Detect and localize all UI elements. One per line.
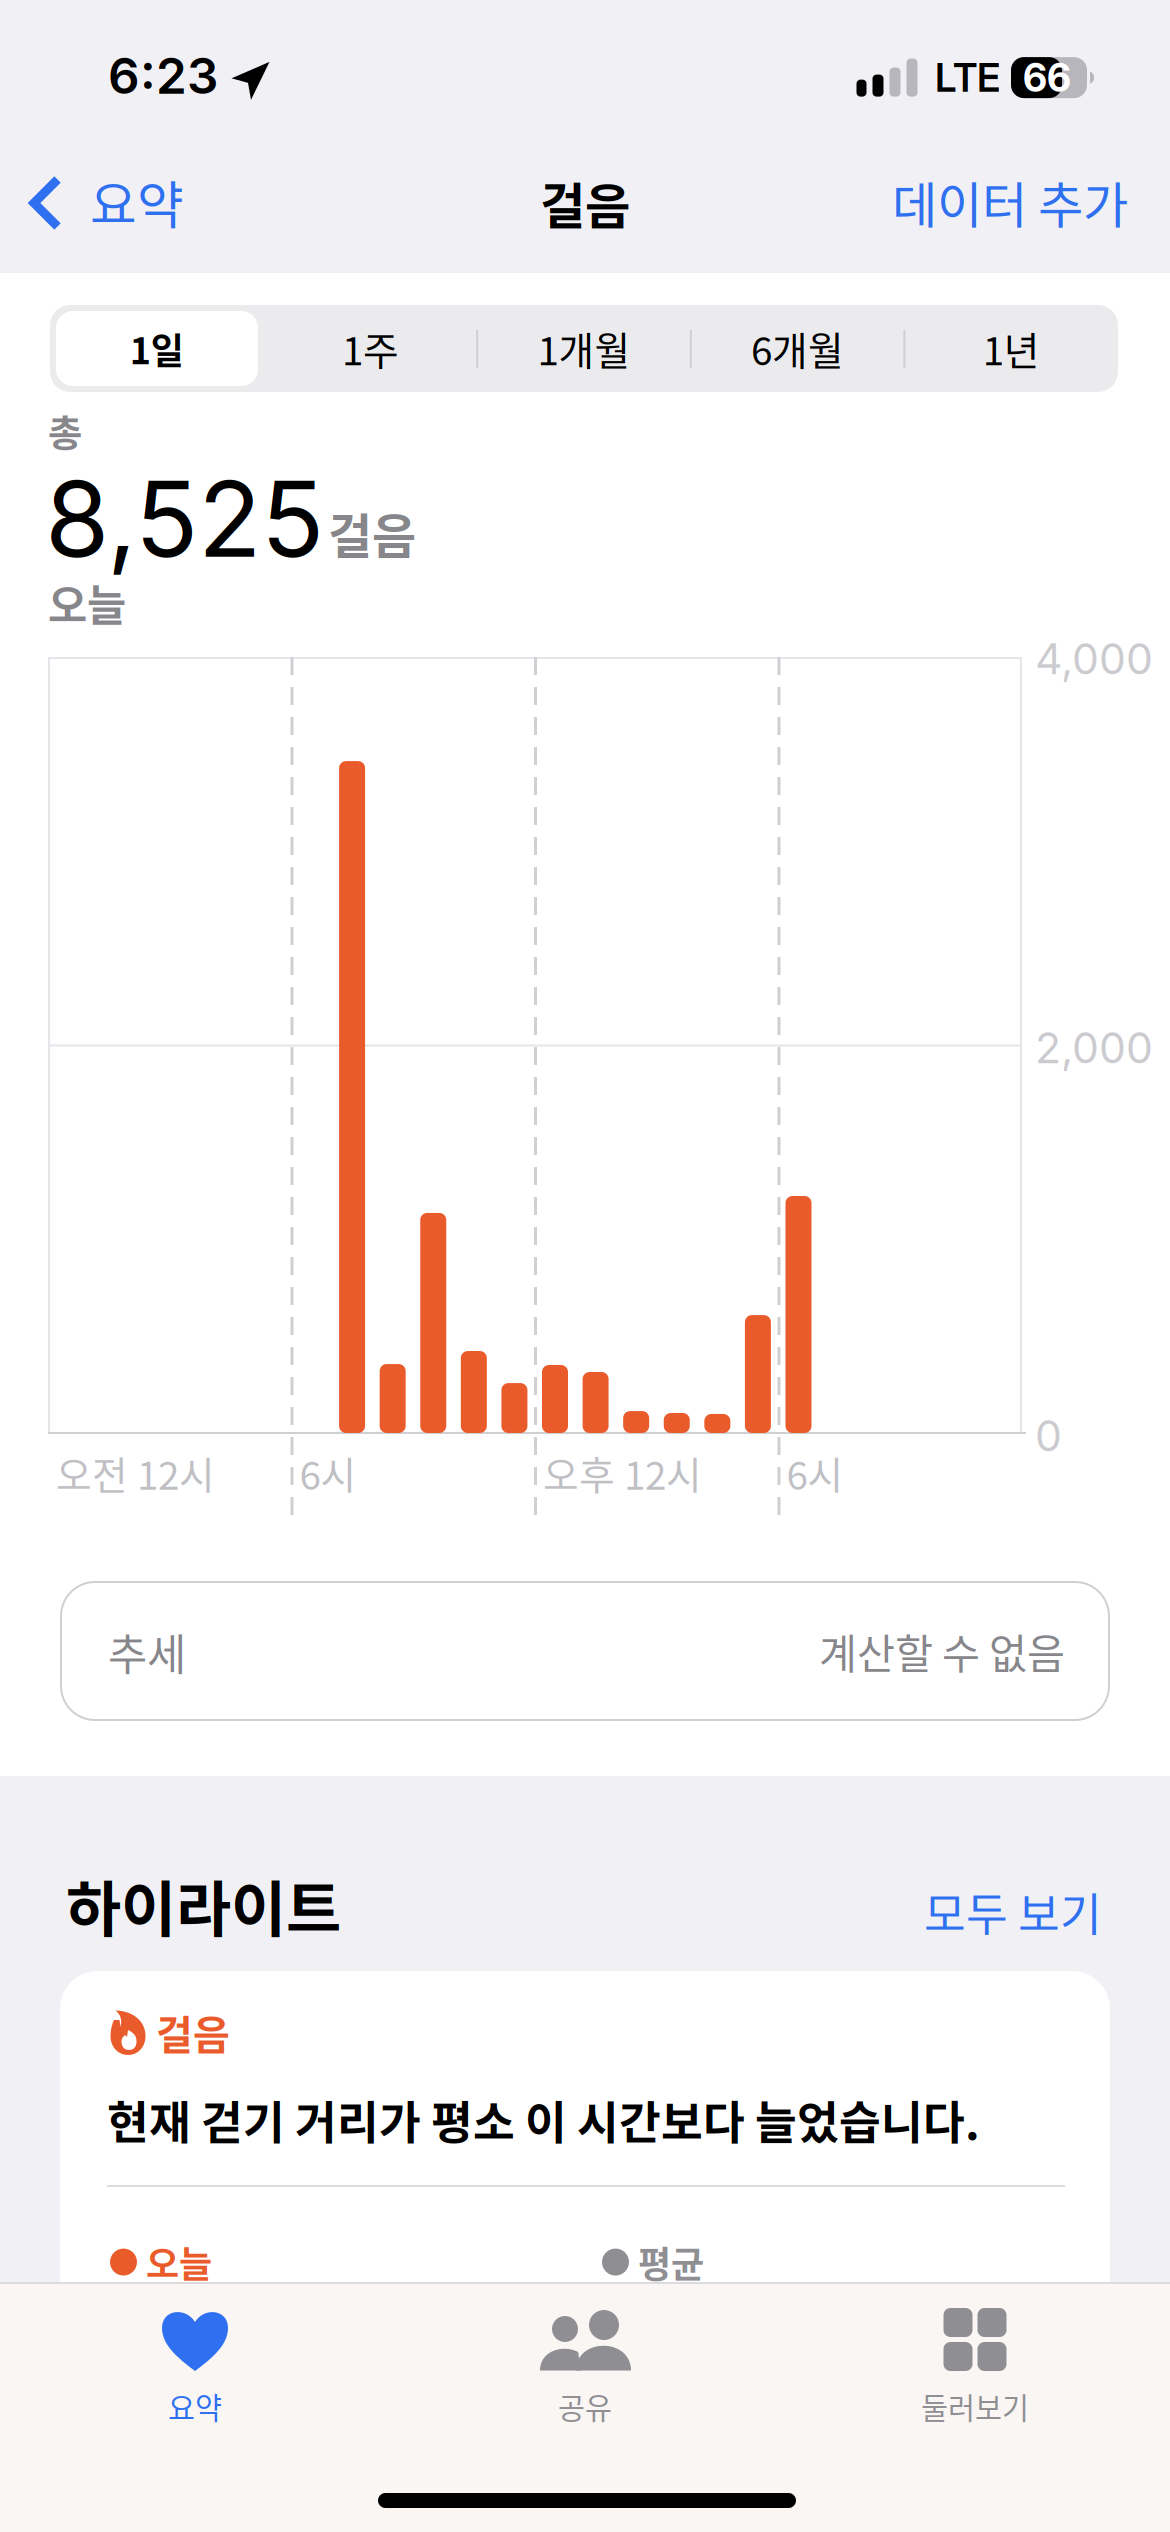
button[interactable]: 1주 — [264, 305, 477, 392]
staticText: 계산할 수 없음 — [819, 1621, 1065, 1681]
staticText: LTE — [935, 54, 1000, 101]
staticText: 6시 — [786, 1445, 843, 1501]
staticText: 4,000 — [1035, 633, 1153, 685]
staticText: 추세 — [108, 1621, 186, 1683]
staticText: 8,525 — [45, 456, 324, 582]
button[interactable]: 6개월 — [691, 305, 904, 392]
button[interactable]: 둘러보기 — [780, 2284, 1170, 2446]
staticText: 1년 — [983, 320, 1040, 376]
staticText: 평균 — [638, 2236, 704, 2288]
button[interactable]: 추세 — [61, 1582, 1109, 1720]
staticText: 요약 — [90, 165, 184, 239]
staticText: 오늘 — [48, 572, 126, 634]
button[interactable]: 공유 — [390, 2284, 780, 2446]
staticText: 둘러보기 — [921, 2385, 1029, 2427]
staticText: 현재 걷기 거리가 평소 이 시간보다 늘었습니다. — [107, 2087, 980, 2153]
staticText: 걸음 — [540, 167, 630, 238]
staticText: 하이라이트 — [66, 1862, 341, 1949]
staticText: 오전 12시 — [56, 1445, 215, 1501]
staticText: 데이터 추가 — [892, 166, 1128, 237]
button[interactable]: 1일 — [50, 305, 264, 392]
staticText: 총 — [48, 404, 82, 458]
staticText: 오늘 — [146, 2236, 212, 2288]
button[interactable]: 데이터 추가 — [868, 146, 1152, 257]
staticText: 걸음 — [156, 2003, 230, 2061]
button[interactable]: 요약 — [11, 159, 202, 245]
button[interactable]: 1개월 — [477, 305, 691, 392]
staticText: 요약 — [168, 2385, 222, 2427]
staticText: 공유 — [558, 2385, 612, 2427]
staticText: 6개월 — [751, 320, 844, 376]
staticText: 2,000 — [1035, 1022, 1153, 1074]
staticText: 6:23 — [108, 46, 218, 106]
button[interactable]: 모두 보기 — [904, 1865, 1122, 1959]
staticText: 0 — [1035, 1410, 1062, 1462]
button[interactable]: 요약 — [0, 2284, 390, 2446]
staticText: 오후 12시 — [543, 1445, 702, 1501]
staticText: 1주 — [342, 320, 399, 376]
staticText: 걸음 — [328, 498, 416, 568]
button[interactable]: 1년 — [904, 305, 1118, 392]
staticText: 6시 — [299, 1445, 356, 1501]
staticText: 모두 보기 — [924, 1879, 1102, 1945]
staticText: 66 — [1023, 54, 1071, 101]
staticText: 1일 — [130, 322, 184, 374]
staticText: 1개월 — [537, 320, 630, 376]
